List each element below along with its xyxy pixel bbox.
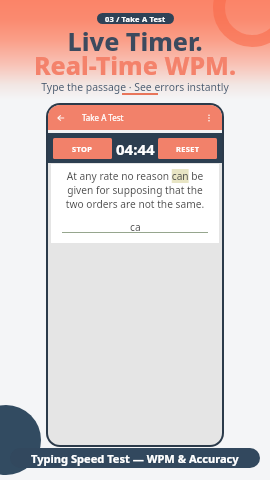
- staticText: 04:44: [116, 139, 155, 158]
- button[interactable]: Typing Speed Test — WPM & Accuracy: [10, 448, 260, 468]
- button[interactable]: More options: [202, 111, 216, 125]
- button[interactable]: RESET: [158, 138, 217, 159]
- staticText: Typing Speed Test — WPM & Accuracy: [31, 451, 239, 466]
- staticText: ca: [130, 220, 141, 232]
- staticText: RESET: [176, 144, 200, 154]
- staticText: Type the passage · See errors instantly: [0, 80, 270, 94]
- button[interactable]: STOP: [53, 138, 112, 159]
- button[interactable]: Back: [54, 111, 68, 125]
- staticText: Real-Time WPM.: [0, 48, 270, 82]
- staticText: STOP: [72, 144, 93, 154]
- button[interactable]: 03 / Take A Test: [97, 13, 174, 24]
- staticText: Take A Test: [82, 112, 124, 123]
- staticText: At any rate no reason can be given for s…: [65, 169, 205, 211]
- staticText: 03 / Take A Test: [105, 14, 166, 24]
- staticText: Live Timer.: [0, 24, 270, 58]
